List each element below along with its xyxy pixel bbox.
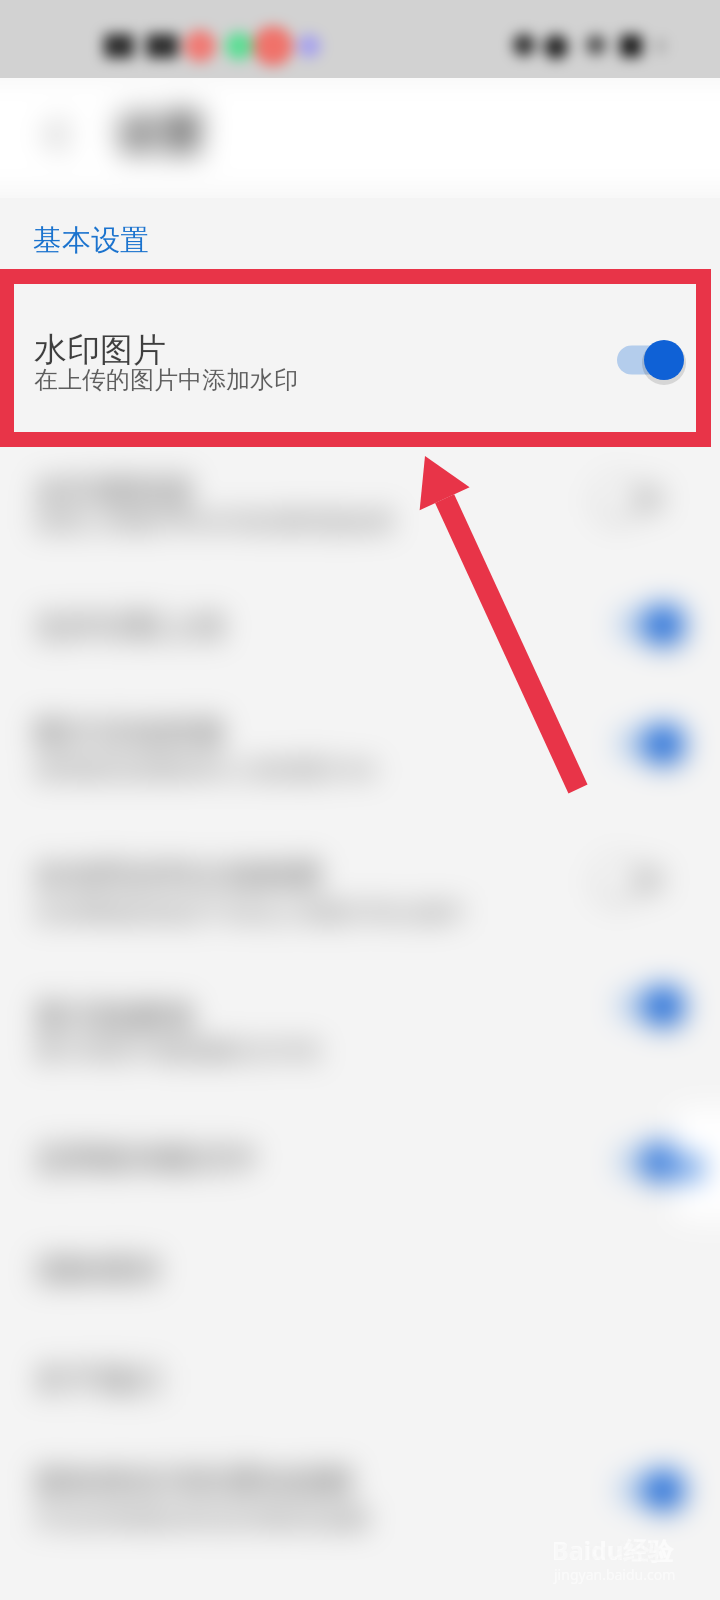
staticText: 清除缓存 [34, 1250, 162, 1290]
button[interactable] [0, 688, 720, 810]
staticText: 设置 [116, 107, 204, 162]
staticText: 在有网络的情况下自动上传图片到云端中 [34, 898, 466, 928]
staticText: 基本设置 [33, 222, 149, 259]
button[interactable] [0, 565, 720, 688]
staticText: 使用更高质量保存上传的图片A4 [34, 752, 376, 785]
staticText: 关于我们 [34, 1360, 162, 1400]
button[interactable]: Switch on [600, 976, 700, 1036]
staticText: 设置上传图片时水印的透明度效果 [34, 507, 394, 537]
staticText: 水印图片 [34, 329, 166, 371]
staticText: 图片压缩质量 [34, 713, 226, 753]
staticText: 启用夜间模式中 [34, 1139, 258, 1179]
staticText: 水印图片 [34, 331, 166, 373]
staticText: 显示系统中被隐藏的文件夹 [34, 1036, 322, 1066]
staticText: 允许访客上传 [34, 606, 226, 646]
button[interactable]: Switch off [600, 850, 700, 910]
button[interactable]: 水印图片 [0, 268, 720, 446]
button[interactable] [0, 1095, 720, 1215]
button[interactable] [0, 446, 720, 565]
button[interactable]: Switch on [600, 595, 700, 655]
staticText: 显示隐藏项 [34, 996, 194, 1036]
button[interactable] [0, 810, 720, 955]
button[interactable] [0, 1430, 720, 1580]
staticText: 在上传的图片中添加水印 [34, 367, 309, 398]
staticText: 接收推送消息通知提醒 [34, 1461, 354, 1501]
staticText: 水印透明度 [34, 471, 194, 511]
button[interactable]: Switch on [600, 714, 700, 774]
staticText: 开启后将接收来自应用推送提醒 [34, 1504, 370, 1534]
button[interactable] [0, 269, 720, 447]
button[interactable] [0, 1320, 720, 1430]
staticText: 自动同步到云端相册 [34, 855, 322, 895]
button[interactable] [0, 1215, 720, 1320]
button[interactable] [0, 955, 720, 1095]
button[interactable]: Switch off [600, 469, 700, 529]
button[interactable]: Back [30, 109, 82, 161]
staticText: 基本设置 [33, 222, 149, 259]
button[interactable]: Switch on [600, 1132, 700, 1192]
button[interactable]: Switch on [600, 330, 700, 390]
button[interactable]: Switch on [600, 330, 700, 390]
button[interactable]: Switch on [600, 1460, 700, 1520]
staticText: 在上传的图片中添加水印 [34, 365, 298, 395]
